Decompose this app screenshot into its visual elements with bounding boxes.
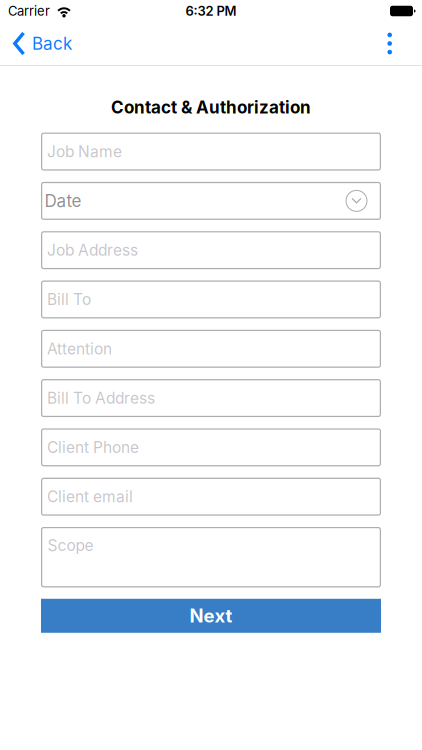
button[interactable]: Bill To Address <box>41 379 381 417</box>
button[interactable]: Scope <box>41 527 381 587</box>
button[interactable]: Back <box>0 33 72 54</box>
button[interactable]: Job Address <box>41 231 381 269</box>
button[interactable]: Client Phone <box>41 428 381 466</box>
button[interactable]: Client email <box>41 478 381 516</box>
button[interactable]: Date <box>41 182 381 220</box>
staticText: 6:32 PM <box>185 3 236 19</box>
staticText: Contact & Authorization <box>111 97 311 118</box>
staticText: Scope <box>47 536 93 555</box>
button[interactable] <box>387 33 422 54</box>
button[interactable]: Bill To <box>41 280 381 318</box>
staticText: Bill To <box>47 290 91 309</box>
staticText: Job Name <box>47 142 122 161</box>
staticText: Next <box>189 605 232 627</box>
staticText: Carrier <box>8 3 50 19</box>
staticText: Job Address <box>47 241 138 260</box>
staticText: Client email <box>47 487 133 506</box>
button[interactable]: Next <box>41 599 381 633</box>
button[interactable]: Attention <box>41 330 381 368</box>
staticText: Attention <box>47 339 112 358</box>
staticText: Client Phone <box>47 438 139 457</box>
button[interactable]: Job Name <box>41 133 381 171</box>
staticText: Back <box>32 33 72 54</box>
staticText: Bill To Address <box>47 389 155 407</box>
staticText: Date <box>44 191 81 211</box>
